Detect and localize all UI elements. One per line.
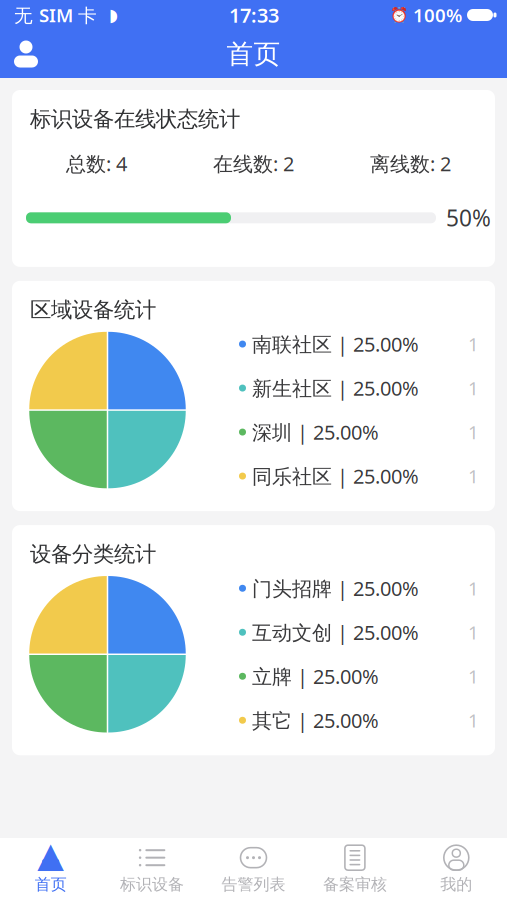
staticText: 我的 [440,875,472,894]
staticText: 立牌 | 25.00% [246,663,379,690]
staticText: 离线数: 2 [370,150,451,177]
button[interactable]: 我的 [406,838,507,900]
staticText: 1 [468,376,479,400]
button[interactable]: 告警列表 [203,838,304,900]
staticText: 区域设备统计 [30,297,156,323]
staticText: 1 [468,332,479,356]
staticText: ⏰ [390,7,408,23]
staticText: ◗ [109,5,118,25]
staticText: 总数: 4 [66,150,127,177]
staticText: 1 [468,708,479,733]
staticText: 同乐社区 | 25.00% [246,463,419,489]
staticText: 1 [468,464,479,488]
staticText: 首页 [226,38,280,70]
staticText: 1 [468,576,479,601]
staticText: 无 SIM 卡 [14,3,97,27]
button[interactable]: 个人中心 [4,32,48,76]
staticText: 首页 [35,875,67,894]
staticText: 南联社区 | 25.00% [246,331,419,357]
staticText: 1 [468,620,479,645]
staticText: 1 [468,420,479,444]
staticText: 互动文创 | 25.00% [246,619,419,646]
button[interactable]: 标识设备 [101,838,203,900]
staticText: 标识设备在线状态统计 [30,106,240,132]
staticText: 门头招牌 | 25.00% [246,575,419,602]
staticText: 备案审核 [323,875,387,894]
button[interactable]: 备案审核 [304,838,406,900]
staticText: 1 [468,664,479,689]
button[interactable]: ▲ [0,838,101,900]
staticText: 告警列表 [221,875,285,894]
staticText: 17:33 [229,2,279,28]
staticText: 在线数: 2 [213,150,294,177]
staticText: 50% [446,203,491,233]
staticText: 深圳 | 25.00% [246,419,379,445]
staticText: ▲ [37,835,64,874]
staticText: 其它 | 25.00% [246,707,379,734]
staticText: 设备分类统计 [30,541,156,567]
staticText: 标识设备 [120,875,184,894]
staticText: 新生社区 | 25.00% [246,375,419,401]
staticText: 100% [408,3,467,27]
